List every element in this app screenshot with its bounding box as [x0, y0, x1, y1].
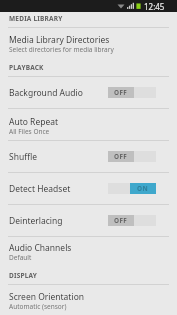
staticText: 12:45 — [144, 1, 165, 12]
staticText: OFF — [114, 152, 128, 161]
button[interactable]: Auto Repeat — [0, 109, 177, 140]
staticText: Audio Channels — [9, 242, 72, 254]
staticText: OFF — [114, 88, 128, 97]
staticText: Shuffle — [9, 151, 38, 163]
button[interactable]: Detect Headset — [0, 173, 177, 204]
staticText: OFF — [114, 216, 128, 225]
staticText: Deinterlacing — [9, 215, 63, 227]
staticText: Background Audio — [9, 87, 83, 99]
staticText: Media Library Directories — [9, 34, 110, 46]
button[interactable]: Screen Orientation — [0, 285, 177, 315]
staticText: DISPLAY — [9, 271, 38, 280]
staticText: All Files Once — [9, 127, 50, 136]
other: Battery — [136, 2, 141, 10]
staticText: Screen Orientation — [9, 291, 85, 303]
button[interactable]: Media Library Directories — [0, 28, 177, 58]
button[interactable]: Background Audio — [0, 77, 177, 108]
staticText: MEDIA LIBRARY — [9, 14, 63, 23]
other: Wi-Fi — [117, 2, 125, 10]
staticText: Automatic (sensor) — [9, 302, 67, 311]
staticText: Detect Headset — [9, 183, 71, 195]
staticText: Auto Repeat — [9, 116, 59, 128]
staticText: PLAYBACK — [9, 63, 44, 72]
button[interactable]: Deinterlacing — [0, 205, 177, 236]
staticText: ON — [137, 184, 149, 193]
button[interactable]: Audio Channels — [0, 237, 177, 266]
other: Signal strength — [127, 2, 134, 10]
staticText: Select directories for media library — [9, 45, 114, 54]
button[interactable]: Shuffle — [0, 141, 177, 172]
staticText: Default — [9, 253, 32, 262]
